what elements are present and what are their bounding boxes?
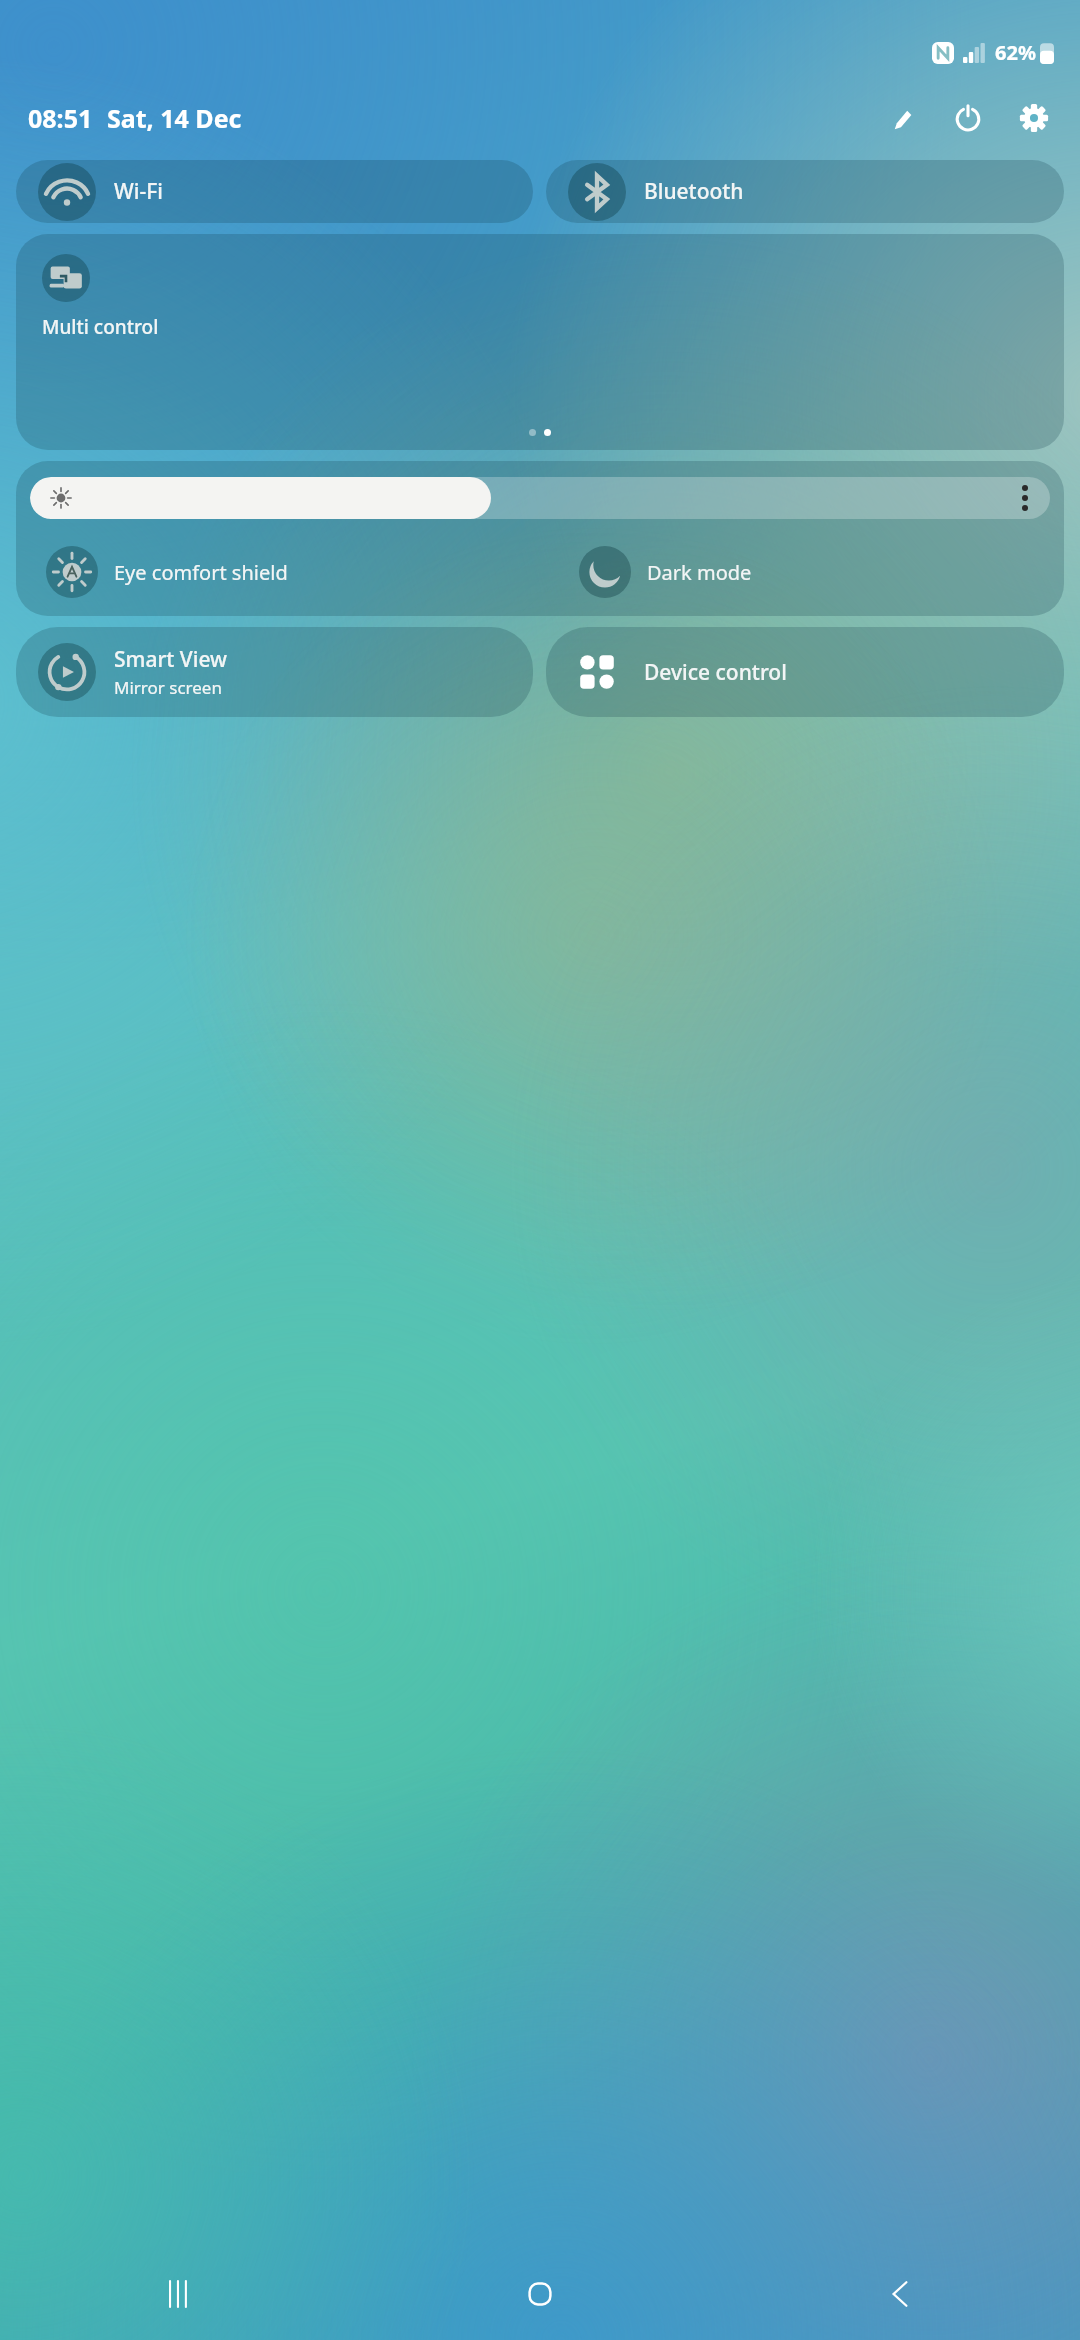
button[interactable]: Smart View — [16, 627, 533, 717]
button[interactable]: Dark mode — [579, 546, 1064, 598]
button[interactable]: Edit quick settings — [880, 96, 924, 140]
staticText: Mirror screen — [114, 676, 222, 699]
staticText: Multi control — [42, 314, 159, 340]
button[interactable]: Power off — [946, 96, 990, 140]
staticText: Eye comfort shield — [114, 559, 288, 586]
staticText: Smart View — [114, 645, 228, 674]
staticText: Device control — [644, 658, 787, 687]
button[interactable]: Eye comfort shield — [16, 546, 579, 598]
button[interactable]: Bluetooth — [546, 160, 1064, 223]
button[interactable]: Home — [360, 2248, 720, 2340]
button[interactable]: Recents — [0, 2248, 360, 2340]
button[interactable]: Wi-Fi — [16, 160, 533, 223]
staticText: 62% — [995, 39, 1036, 66]
staticText: Wi-Fi — [114, 177, 163, 206]
staticText: 08:51 — [28, 101, 93, 135]
button[interactable]: Brightness — [30, 477, 1050, 519]
staticText: Bluetooth — [644, 177, 744, 206]
staticText: Dark mode — [647, 559, 752, 586]
button[interactable]: Device control — [546, 627, 1064, 717]
button[interactable]: Multi control — [16, 234, 1064, 450]
button[interactable]: Settings — [1012, 96, 1056, 140]
staticText: Sat, 14 Dec — [107, 101, 242, 135]
button[interactable]: Back — [720, 2248, 1080, 2340]
